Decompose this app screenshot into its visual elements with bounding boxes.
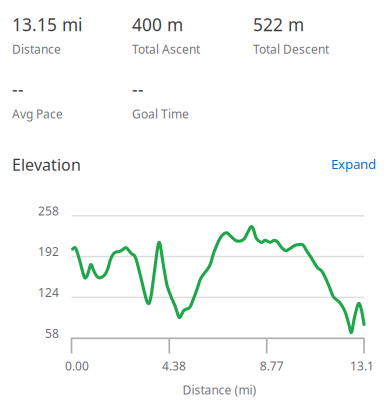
staticText: 8.77 <box>260 358 284 374</box>
staticText: Avg Pace <box>12 106 63 122</box>
staticText: Total Descent <box>253 41 329 57</box>
staticText: 124 <box>38 284 59 300</box>
staticText: 4.38 <box>162 358 186 374</box>
staticText: Distance (mi) <box>182 382 256 398</box>
staticText: 58 <box>45 325 59 341</box>
staticText: 192 <box>38 243 59 259</box>
staticText: -- <box>12 78 24 101</box>
staticText: 258 <box>38 203 59 219</box>
staticText: -- <box>132 78 144 101</box>
staticText: 0.00 <box>65 358 89 374</box>
staticText: 13.15 mi <box>12 13 82 36</box>
button[interactable]: Expand <box>331 154 376 173</box>
staticText: 400 m <box>132 13 183 36</box>
staticText: 522 m <box>253 13 304 36</box>
staticText: Goal Time <box>132 106 189 122</box>
staticText: Total Ascent <box>132 41 200 57</box>
staticText: Elevation <box>12 154 81 175</box>
staticText: Distance <box>12 41 61 57</box>
staticText: 13.1 <box>350 358 374 374</box>
staticText: Expand <box>331 155 376 173</box>
